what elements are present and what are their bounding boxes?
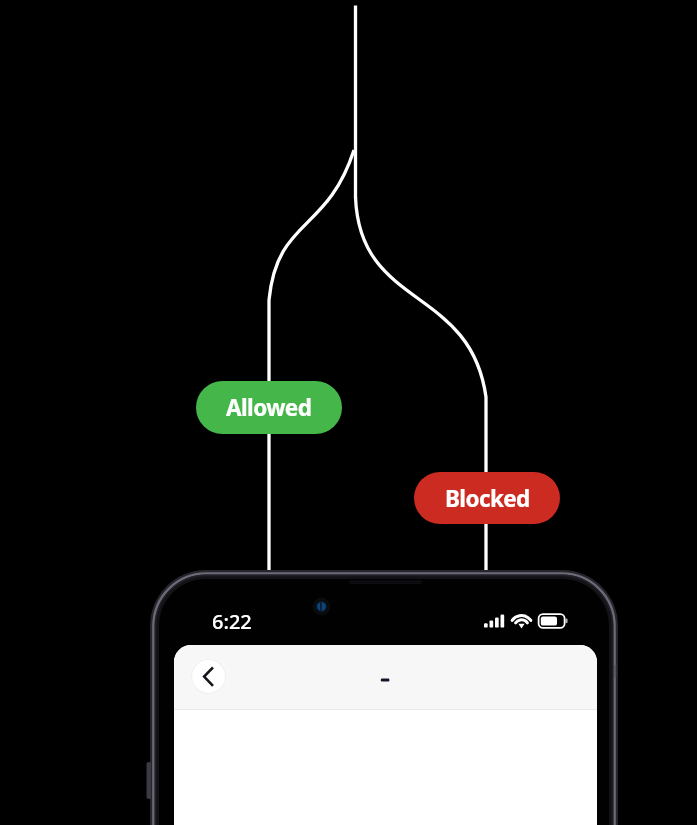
staticText: 6:22 (212, 608, 252, 635)
staticText: Blocked (445, 483, 530, 514)
button[interactable]: Blocked (414, 472, 560, 524)
button[interactable]: Back (191, 659, 226, 694)
button[interactable]: Allowed (196, 381, 342, 434)
staticText: Allowed (226, 392, 312, 423)
